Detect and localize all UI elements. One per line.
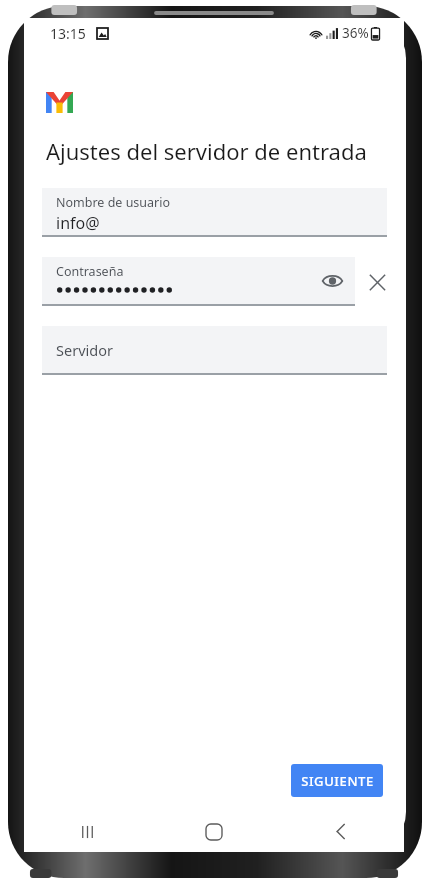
button[interactable]: Borrar (360, 265, 394, 299)
staticText: Servidor (56, 340, 113, 360)
button[interactable]: Contraseña (42, 257, 355, 306)
button[interactable]: SIGUIENTE (291, 764, 383, 797)
button[interactable]: Servidor (42, 326, 387, 375)
staticText: SIGUIENTE (301, 772, 374, 790)
button[interactable]: Recientes (24, 811, 150, 852)
button[interactable]: Inicio (150, 811, 277, 852)
staticText: 36% (342, 24, 369, 42)
staticText: Contraseña (56, 263, 124, 280)
button[interactable]: Atrás (277, 811, 404, 852)
button[interactable]: Nombre de usuario (42, 188, 387, 237)
staticText: Nombre de usuario (56, 194, 171, 211)
staticText: 13:15 (50, 24, 86, 43)
staticText: info@ (56, 212, 100, 234)
button[interactable]: Mostrar contraseña (317, 266, 347, 296)
staticText: Ajustes del servidor de entrada (46, 136, 367, 166)
